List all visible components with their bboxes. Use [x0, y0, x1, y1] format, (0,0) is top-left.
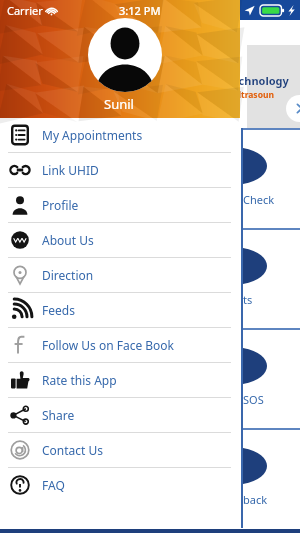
- staticText: Follow Us on Face Book: [42, 337, 175, 353]
- button[interactable]: My Appointments: [0, 118, 240, 152]
- staticText: Ultrasoun: [232, 89, 274, 101]
- button[interactable]: Rate this App: [0, 363, 240, 397]
- staticText: echnology: [232, 73, 289, 88]
- button[interactable]: Next banner: [286, 95, 300, 122]
- staticText: 3:12 PM: [119, 3, 161, 18]
- staticText: Link UHID: [42, 162, 99, 178]
- button[interactable]: SOS: [241, 328, 300, 428]
- staticText: Contact Us: [42, 442, 104, 458]
- button[interactable]: Link UHID: [0, 153, 240, 187]
- button[interactable]: FAQ: [0, 468, 240, 502]
- button[interactable]: back: [241, 428, 300, 528]
- staticText: Sunil: [104, 95, 134, 113]
- button[interactable]: Check: [241, 128, 300, 228]
- button[interactable]: Contact Us: [0, 433, 240, 467]
- staticText: back: [243, 492, 268, 507]
- staticText: Share: [42, 407, 75, 423]
- staticText: Check: [243, 192, 275, 207]
- staticText: SOS: [243, 392, 264, 407]
- button[interactable]: Direction: [0, 258, 240, 292]
- button[interactable]: About Us: [0, 223, 240, 257]
- button[interactable]: Share: [0, 398, 240, 432]
- button[interactable]: Profile photo: [88, 18, 162, 92]
- staticText: My Appointments: [42, 127, 143, 143]
- staticText: ts: [243, 292, 253, 307]
- staticText: Carrier: [7, 3, 43, 18]
- staticText: Feeds: [42, 302, 75, 318]
- button[interactable]: ts: [241, 228, 300, 328]
- button[interactable]: Follow Us on Face Book: [0, 328, 240, 362]
- staticText: Profile: [42, 197, 79, 213]
- staticText: Direction: [42, 267, 94, 283]
- staticText: About Us: [42, 232, 94, 248]
- staticText: FAQ: [42, 477, 65, 493]
- staticText: Rate this App: [42, 372, 117, 388]
- button[interactable]: Feeds: [0, 293, 240, 327]
- button[interactable]: Profile: [0, 188, 240, 222]
